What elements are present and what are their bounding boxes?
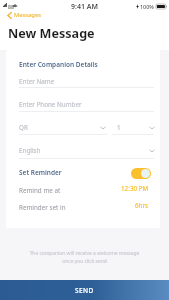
button[interactable]: Back to Messages (7, 10, 41, 20)
staticText: QR (19, 123, 28, 132)
staticText: SEND (75, 286, 94, 295)
button[interactable]: Expand (149, 149, 155, 153)
button[interactable]: SEND (0, 280, 169, 300)
button[interactable]: Expand (100, 126, 106, 130)
staticText: 9:41 AM (71, 2, 98, 12)
staticText: 100% (140, 3, 154, 10)
button[interactable]: Remind me at (6, 183, 160, 194)
staticText: Enter Name (19, 77, 55, 86)
staticText: New Message (8, 25, 95, 42)
staticText: Enter Companion Details (19, 60, 98, 69)
staticText: Enter Phone Number (19, 100, 82, 109)
staticText: Remind me at (19, 186, 61, 195)
staticText: 88 (8, 3, 14, 10)
staticText: English (19, 146, 41, 155)
button[interactable]: Reminder set in (6, 200, 160, 211)
button[interactable]: Expand (149, 126, 155, 130)
button[interactable]: Set Reminder toggle, on (131, 168, 151, 179)
staticText: The companion will receive a welcome mes… (14, 250, 155, 265)
staticText: Set Reminder (19, 168, 62, 177)
staticText: Reminder set in (19, 203, 66, 212)
staticText: 1 (117, 123, 121, 132)
staticText: 12:30 PM (121, 184, 149, 193)
staticText: Messages (14, 11, 41, 19)
staticText: 6hrs (135, 201, 149, 210)
